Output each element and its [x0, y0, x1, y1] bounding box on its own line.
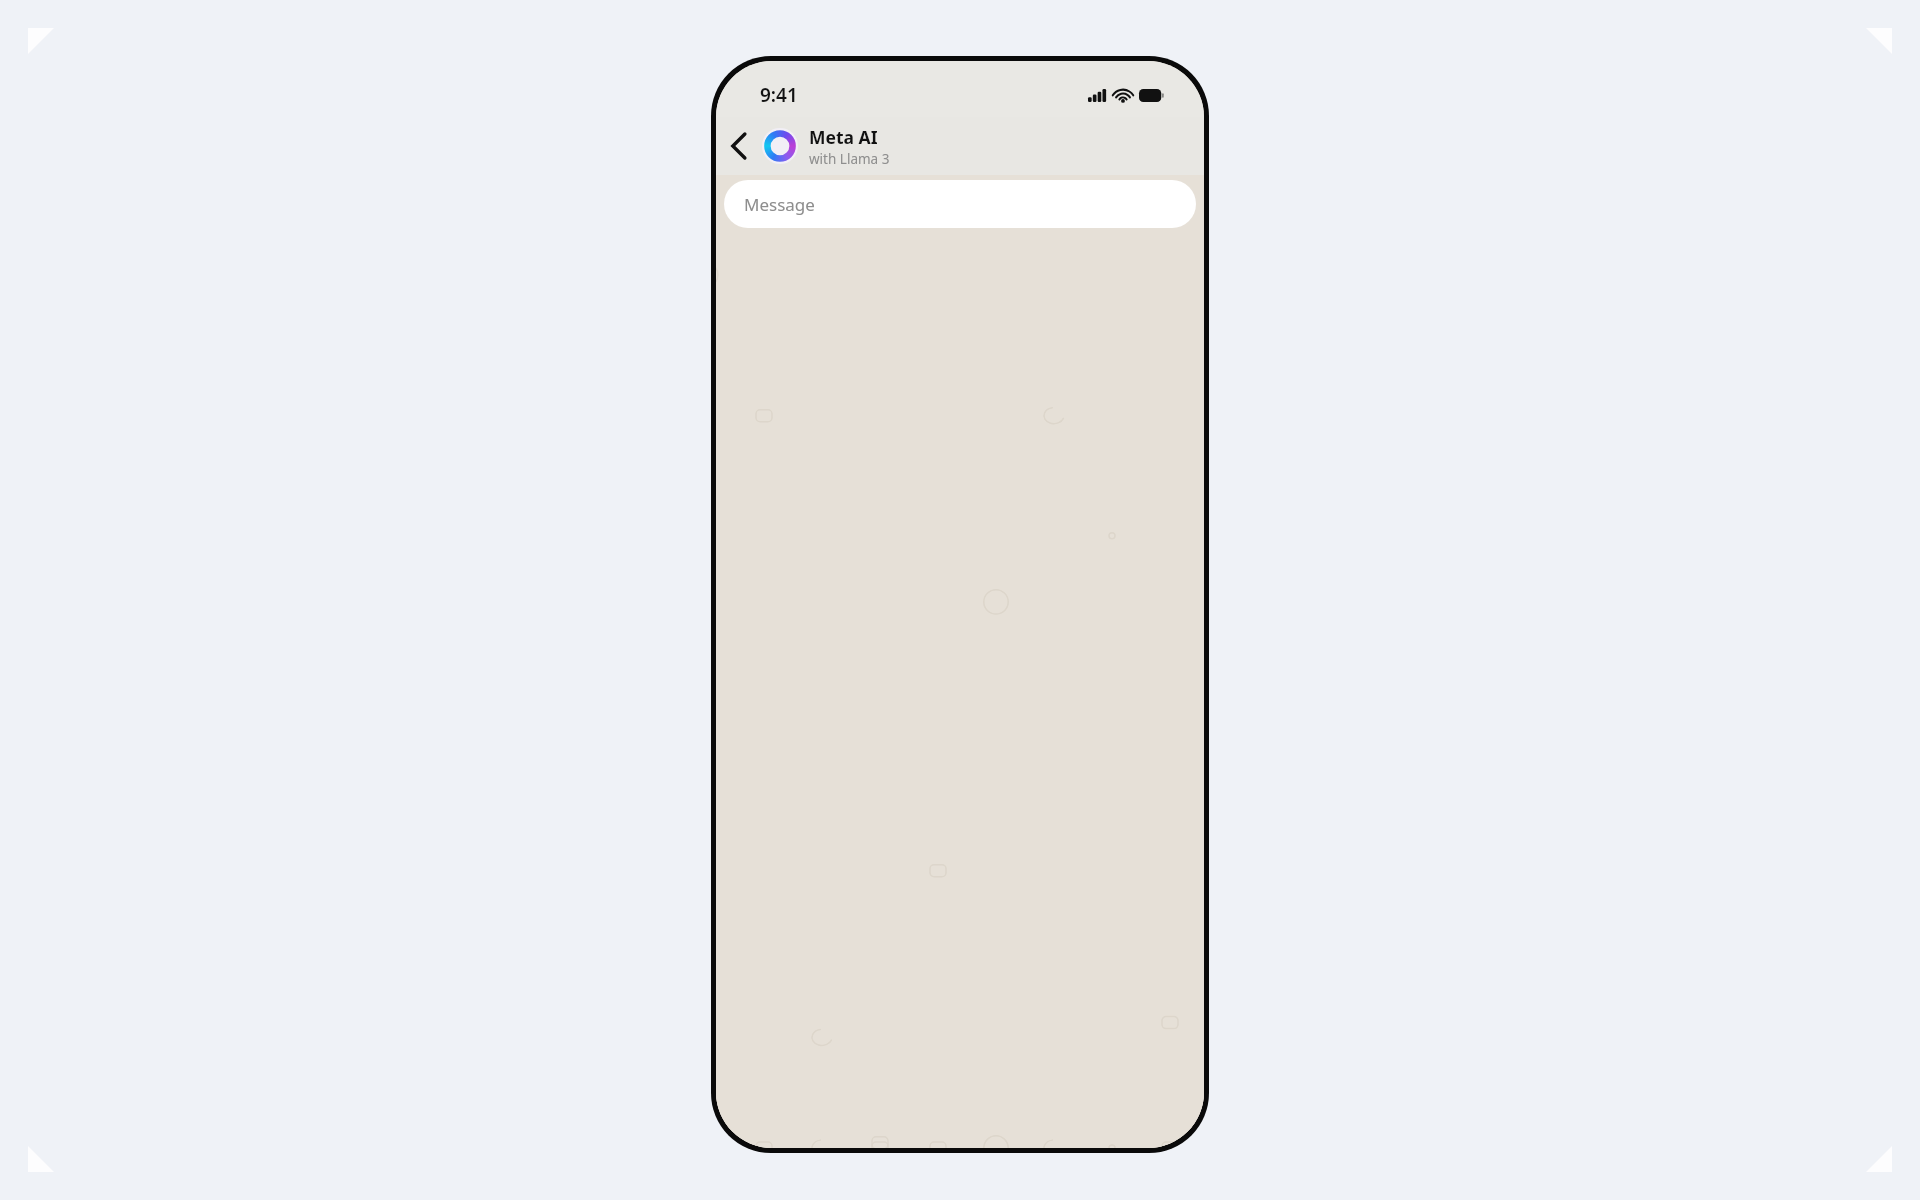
button[interactable]: Meta AI	[809, 125, 1204, 168]
button[interactable]: Back	[716, 117, 762, 175]
staticText: Message	[744, 193, 815, 216]
staticText: 9:41	[760, 82, 798, 108]
staticText: Meta AI	[809, 125, 878, 149]
staticText: with Llama 3	[809, 150, 890, 168]
button[interactable]: Message	[724, 180, 1196, 228]
